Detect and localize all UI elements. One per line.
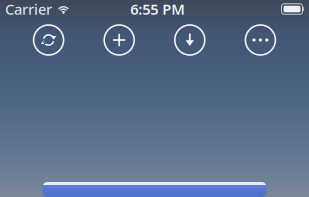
staticText: 6:55 PM (130, 0, 185, 19)
button[interactable]: Refresh (27, 20, 71, 60)
button[interactable]: Add (97, 20, 141, 60)
staticText: Carrier (5, 0, 52, 19)
button[interactable]: Download (168, 20, 212, 60)
button[interactable]: More (238, 20, 282, 60)
